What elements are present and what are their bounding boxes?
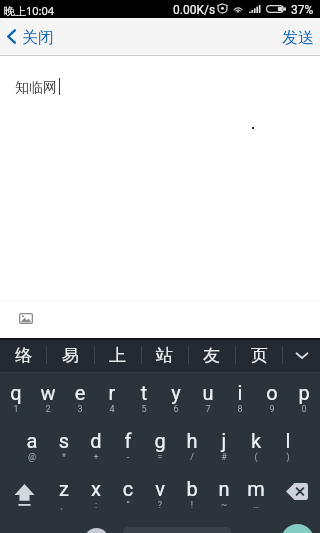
staticText: # [208, 452, 240, 463]
staticText: 站 [156, 345, 173, 366]
button[interactable]: s [48, 422, 80, 470]
button[interactable]: b [176, 470, 208, 518]
button[interactable]: Insert image [12, 307, 39, 330]
button[interactable]: 络 [0, 338, 47, 372]
staticText: 友 [203, 345, 220, 366]
button[interactable]: 上 [94, 338, 141, 372]
staticText: c [112, 477, 144, 500]
button[interactable]: x [80, 470, 112, 518]
staticText: 8 [224, 404, 256, 415]
staticText: - [112, 452, 144, 463]
staticText: x [80, 477, 112, 500]
button[interactable]: l [272, 422, 304, 470]
staticText: m [240, 477, 272, 500]
staticText: u [192, 381, 224, 404]
staticText: s [48, 429, 80, 452]
button[interactable]: c [112, 470, 144, 518]
staticText: r [96, 381, 128, 404]
button[interactable]: 友 [188, 338, 235, 372]
staticText: = [144, 452, 176, 463]
staticText: t [128, 381, 160, 404]
staticText: * [48, 452, 80, 463]
staticText: a [16, 429, 48, 452]
button[interactable]: m [240, 470, 272, 518]
staticText: 9 [256, 404, 288, 415]
button[interactable]: 页 [236, 338, 283, 372]
staticText: z [48, 477, 80, 500]
staticText: k [240, 429, 272, 452]
button[interactable]: 站 [141, 338, 188, 372]
staticText: ~ [208, 500, 240, 511]
staticText: 上 [109, 345, 126, 366]
button[interactable]: g [144, 422, 176, 470]
staticText: ) [272, 452, 304, 463]
staticText: 、 [48, 500, 80, 511]
staticText: d [80, 429, 112, 452]
staticText: q [0, 381, 32, 404]
staticText: g [144, 429, 176, 452]
staticText: @ [16, 452, 48, 463]
staticText: h [176, 429, 208, 452]
button[interactable]: n [208, 470, 240, 518]
staticText: 0.00K/s [173, 3, 216, 17]
staticText: ? [144, 500, 176, 511]
staticText: … [240, 500, 272, 511]
button[interactable]: y [160, 374, 192, 422]
staticText: 6 [160, 404, 192, 415]
button[interactable]: o [256, 374, 288, 422]
button[interactable]: 易 [47, 338, 94, 372]
staticText: 0 [288, 404, 320, 415]
staticText: j [208, 429, 240, 452]
staticText: ” [112, 500, 144, 511]
staticText: 7 [192, 404, 224, 415]
button[interactable]: 关闭 [7, 18, 54, 55]
button[interactable]: Emoji [84, 528, 109, 533]
staticText: b [176, 477, 208, 500]
button[interactable]: q [0, 374, 32, 422]
staticText: 发送 [282, 28, 314, 48]
staticText: + [80, 452, 112, 463]
button[interactable]: j [208, 422, 240, 470]
staticText: v [144, 477, 176, 500]
button[interactable]: d [80, 422, 112, 470]
staticText: o [256, 381, 288, 404]
button[interactable]: r [96, 374, 128, 422]
staticText: / [176, 452, 208, 463]
staticText: 页 [251, 345, 268, 366]
button[interactable]: e [64, 374, 96, 422]
staticText: 3 [64, 404, 96, 415]
button[interactable]: Expand candidates [283, 338, 320, 372]
staticText: n [208, 477, 240, 500]
staticText: l [272, 429, 304, 452]
button[interactable]: u [192, 374, 224, 422]
staticText: p [288, 381, 320, 404]
staticText: 晚上10:04 [4, 3, 55, 18]
button[interactable]: f [112, 422, 144, 470]
button[interactable]: a [16, 422, 48, 470]
staticText: i [224, 381, 256, 404]
button[interactable]: k [240, 422, 272, 470]
staticText: f [112, 429, 144, 452]
staticText: e [64, 381, 96, 404]
staticText: ! [176, 500, 208, 511]
staticText: ( [240, 452, 272, 463]
staticText: 2 [32, 404, 64, 415]
button[interactable]: p [288, 374, 320, 422]
button[interactable]: Enter [281, 524, 314, 533]
staticText: 37% [291, 3, 314, 17]
button[interactable]: z [48, 470, 80, 518]
button[interactable]: Backspace [272, 470, 320, 518]
button[interactable]: Shift [0, 470, 48, 518]
staticText: 1 [0, 404, 32, 415]
button[interactable]: v [144, 470, 176, 518]
button[interactable]: i [224, 374, 256, 422]
button[interactable]: w [32, 374, 64, 422]
button[interactable]: h [176, 422, 208, 470]
staticText: 知临网 [15, 79, 57, 97]
staticText: 5 [128, 404, 160, 415]
staticText: w [32, 381, 64, 404]
button[interactable]: 发送 [282, 18, 314, 55]
staticText: y [160, 381, 192, 404]
button[interactable]: t [128, 374, 160, 422]
